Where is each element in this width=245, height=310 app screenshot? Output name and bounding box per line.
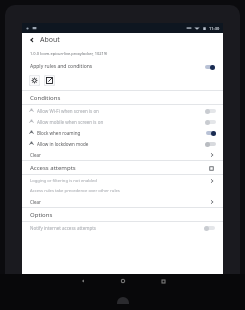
staticText: Conditions xyxy=(30,94,61,102)
staticText: Access attempts xyxy=(30,164,76,172)
staticText: About xyxy=(40,35,60,45)
button[interactable]: Allow in lockdown mode xyxy=(22,138,223,149)
staticText: Allow Wi-Fi when screen is on xyxy=(37,108,99,114)
button[interactable]: Clear xyxy=(22,196,223,207)
button[interactable]: Access rules take precedence over other … xyxy=(22,186,223,196)
staticText: Options xyxy=(30,211,53,219)
staticText: Allow in lockdown mode xyxy=(37,141,89,147)
button[interactable]: Allow Wi-Fi when screen is on xyxy=(22,105,223,116)
button[interactable]: Apply rules and conditions xyxy=(22,61,223,72)
button[interactable]: Toggle xyxy=(205,130,216,136)
staticText: Allow mobile when screen is on xyxy=(37,119,104,125)
button[interactable]: Open link xyxy=(44,75,55,86)
staticText: Block when roaming xyxy=(37,130,81,136)
button[interactable]: Back xyxy=(77,275,89,287)
staticText: Access rules take precedence over other … xyxy=(30,188,120,194)
staticText: Clear xyxy=(30,199,41,205)
staticText: Clear xyxy=(30,152,41,158)
staticText: Apply rules and conditions xyxy=(30,63,93,70)
button[interactable]: Logging or filtering is not enabled xyxy=(22,175,223,186)
button[interactable]: Clear xyxy=(22,149,223,160)
button[interactable]: Navigate up xyxy=(27,35,37,45)
button[interactable]: Toggle xyxy=(204,225,215,231)
staticText: Notify internet access attempts xyxy=(30,225,96,231)
button[interactable]: Toggle xyxy=(205,119,216,125)
staticText: Logging or filtering is not enabled xyxy=(30,178,97,184)
button[interactable]: Home xyxy=(117,275,129,287)
button[interactable]: Block when roaming xyxy=(22,127,223,138)
button[interactable]: Section options xyxy=(207,164,215,172)
button[interactable]: Recent apps xyxy=(157,275,169,287)
button[interactable]: Settings xyxy=(29,75,40,86)
button[interactable]: Toggle xyxy=(205,108,216,114)
button[interactable]: Toggle xyxy=(205,141,216,147)
staticText: 11:30 xyxy=(209,26,220,31)
staticText: 1.0.0 (com.epicurrlive.proxylocker, 1021… xyxy=(30,51,108,56)
button[interactable]: Notify internet access attempts xyxy=(22,222,223,233)
button[interactable]: Toggle xyxy=(204,64,215,70)
button[interactable]: Allow mobile when screen is on xyxy=(22,116,223,127)
